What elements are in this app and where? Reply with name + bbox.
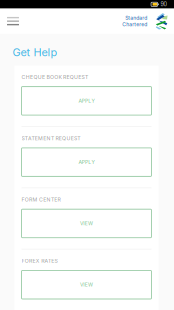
staticText: VIEW xyxy=(80,282,93,288)
staticText: Chartered xyxy=(122,21,147,27)
staticText: Standard xyxy=(125,15,147,21)
staticText: APPLY xyxy=(78,98,95,104)
button[interactable]: VIEW xyxy=(14,264,158,299)
button[interactable]: APPLY xyxy=(14,141,158,176)
staticText: Get Help xyxy=(12,46,57,59)
staticText: FOREX RATES xyxy=(21,258,57,264)
staticText: CHEQUE BOOK REQUEST xyxy=(21,74,88,80)
staticText: FORM CENTER xyxy=(21,196,60,203)
button[interactable]: VIEW xyxy=(14,203,158,238)
staticText: STATEMENT REQUEST xyxy=(21,135,80,141)
staticText: VIEW xyxy=(80,220,93,226)
staticText: 90 xyxy=(161,1,168,8)
staticText: APPLY xyxy=(78,159,95,165)
button[interactable]: Menu xyxy=(0,9,28,34)
button[interactable]: APPLY xyxy=(14,80,158,115)
